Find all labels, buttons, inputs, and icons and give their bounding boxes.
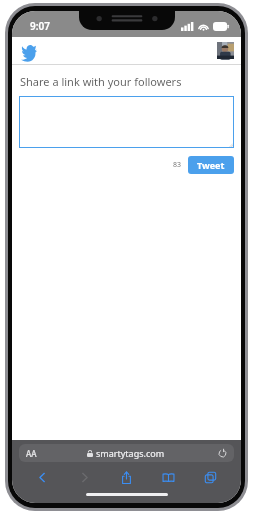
staticText: 83 [173,160,182,170]
button[interactable]: Reload [214,445,230,461]
button[interactable]: Tabs [189,465,231,489]
button[interactable]: Tweet [188,156,234,174]
staticText: Share a link with your followers [20,74,182,89]
staticText: 9:07 [30,19,50,33]
button[interactable]: Share [105,465,147,489]
button[interactable]: Page settings [19,444,234,462]
button[interactable]: Twitter [19,41,39,61]
staticText: smartytags.com [96,447,165,459]
staticText: AA [26,448,37,459]
staticText: Tweet [197,159,225,171]
button[interactable] [19,96,234,148]
button[interactable]: Account [217,42,234,59]
button[interactable]: Bookmarks [147,465,189,489]
button[interactable]: Back [22,465,63,489]
